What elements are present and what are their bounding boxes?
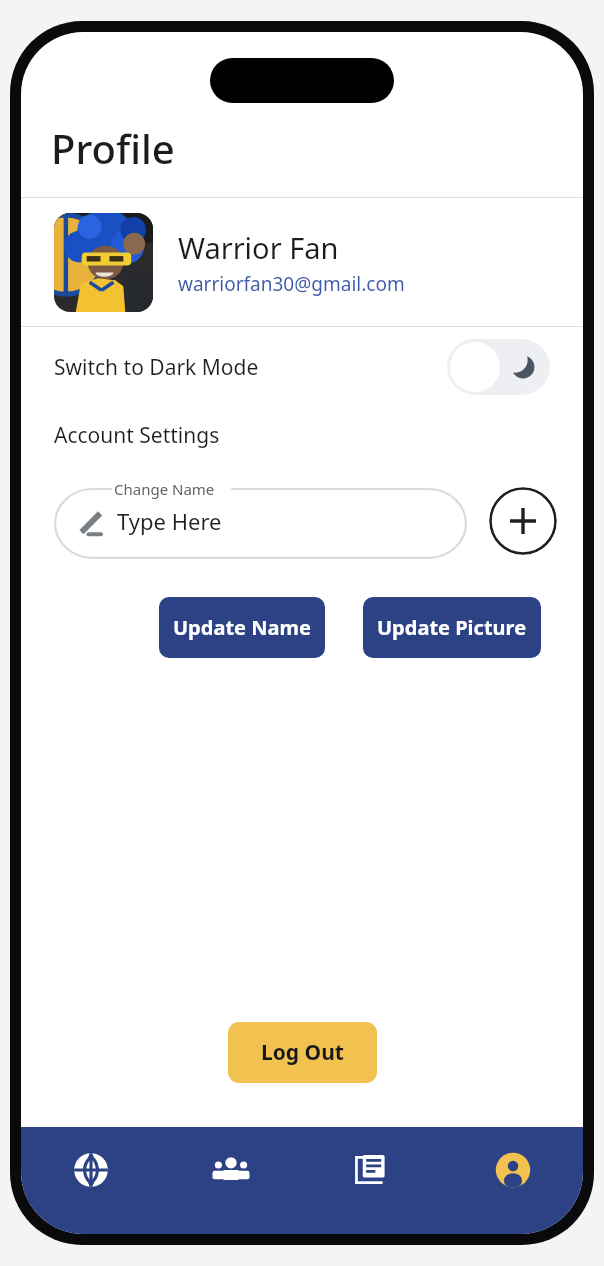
staticText: Type Here: [117, 506, 222, 536]
button[interactable]: Teams: [161, 1127, 301, 1234]
staticText: Log Out: [261, 1038, 344, 1067]
button[interactable]: Games: [21, 1127, 161, 1234]
staticText: warriorfan30@gmail.com: [178, 271, 405, 297]
button[interactable]: News: [301, 1127, 442, 1234]
button[interactable]: Update Picture: [363, 597, 541, 658]
staticText: Update Name: [173, 614, 311, 641]
button[interactable]: Switch to Dark Mode: [21, 327, 583, 407]
staticText: Profile: [51, 121, 175, 175]
staticText: Warrior Fan: [178, 228, 339, 267]
staticText: Account Settings: [54, 421, 220, 450]
button[interactable]: Warrior Fan: [21, 198, 583, 326]
button[interactable]: Profile: [442, 1127, 583, 1234]
button[interactable]: Switch to Dark Mode: [447, 339, 550, 395]
staticText: Change Name: [114, 479, 215, 499]
staticText: Switch to Dark Mode: [54, 353, 259, 382]
button[interactable]: Add picture: [489, 487, 557, 555]
staticText: Update Picture: [377, 614, 527, 641]
button[interactable]: Update Name: [159, 597, 325, 658]
button[interactable]: Log Out: [228, 1022, 377, 1083]
